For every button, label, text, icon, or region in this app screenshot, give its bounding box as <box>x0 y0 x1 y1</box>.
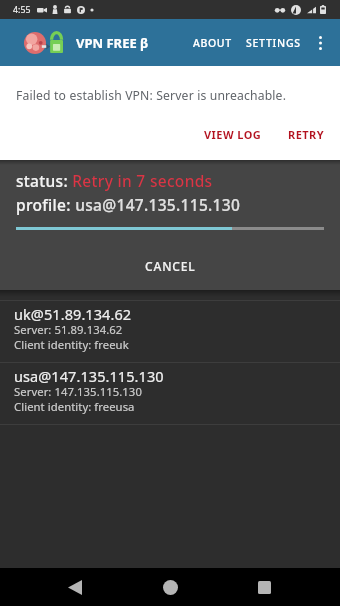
staticText: Failed to establish VPN: Server is unrea… <box>16 87 287 104</box>
button[interactable]: SETTINGS <box>239 26 308 60</box>
staticText: Server: 51.89.134.62 <box>14 322 123 337</box>
staticText: VPN FREE β <box>76 34 149 52</box>
staticText: uk@51.89.134.62 <box>14 304 132 324</box>
staticText: RETRY <box>288 127 325 142</box>
button[interactable]: Recent apps <box>240 568 288 606</box>
staticText: SETTINGS <box>246 36 301 50</box>
staticText: status: Retry in 7 seconds <box>16 170 213 191</box>
button[interactable]: uk@51.89.134.62 <box>0 301 340 362</box>
staticText: CANCEL <box>145 258 196 274</box>
button[interactable]: Back <box>51 568 99 606</box>
staticText: usa@147.135.115.130 <box>14 366 164 386</box>
button[interactable]: RETRY <box>282 122 331 147</box>
button[interactable]: More options <box>308 23 332 63</box>
staticText: 4:55 <box>13 4 31 16</box>
staticText: VIEW LOG <box>204 127 262 142</box>
button[interactable]: ABOUT <box>186 26 239 60</box>
staticText: Client identity: freeusa <box>14 399 135 414</box>
staticText: Client identity: freeuk <box>14 337 129 352</box>
staticText: ABOUT <box>193 36 232 50</box>
staticText: profile: usa@147.135.115.130 <box>16 194 241 215</box>
button[interactable]: Home <box>146 568 194 606</box>
button[interactable]: usa@147.135.115.130 <box>0 363 340 424</box>
staticText: Server: 147.135.115.130 <box>14 384 142 399</box>
button[interactable]: CANCEL <box>129 253 212 279</box>
button[interactable]: VIEW LOG <box>198 122 268 147</box>
